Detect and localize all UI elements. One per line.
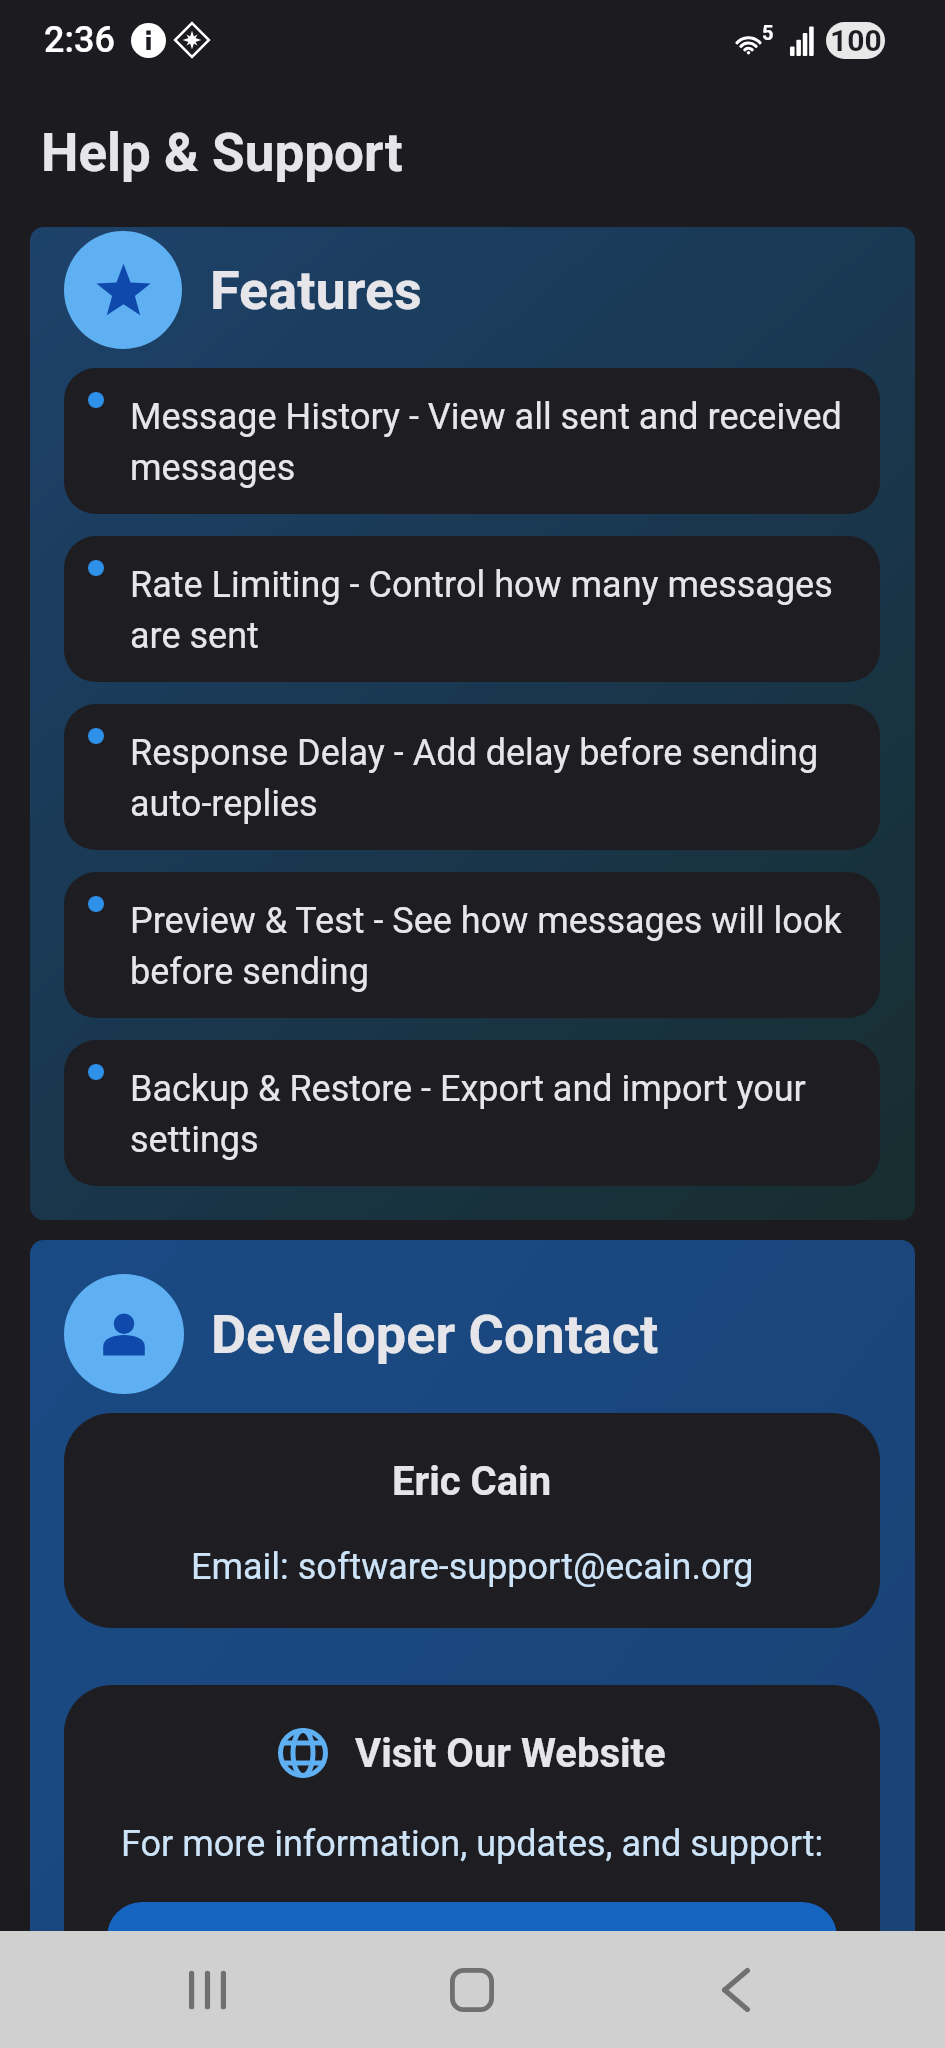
- button[interactable]: Recent apps: [157, 1931, 257, 2048]
- button[interactable]: Message History - View all sent and rece…: [64, 368, 880, 514]
- button[interactable]: Eric Cain: [64, 1413, 880, 1628]
- staticText: 5: [762, 21, 774, 44]
- staticText: 100: [830, 23, 882, 58]
- button[interactable]: Preview & Test - See how messages will l…: [64, 872, 880, 1018]
- staticText: Response Delay - Add delay before sendin…: [130, 732, 856, 824]
- button[interactable]: Home: [422, 1931, 522, 2048]
- staticText: Help & Support: [41, 122, 403, 184]
- staticText: Email: software-support@ecain.org: [191, 1546, 754, 1588]
- button[interactable]: Response Delay - Add delay before sendin…: [64, 704, 880, 850]
- button[interactable]: Backup & Restore - Export and import you…: [64, 1040, 880, 1186]
- staticText: Visit Our Website: [355, 1730, 666, 1777]
- staticText: Backup & Restore - Export and import you…: [130, 1068, 856, 1160]
- staticText: Rate Limiting - Control how many message…: [130, 564, 856, 656]
- button[interactable]: Back: [686, 1931, 786, 2048]
- staticText: Message History - View all sent and rece…: [130, 396, 856, 488]
- button[interactable]: Rate Limiting - Control how many message…: [64, 536, 880, 682]
- staticText: 2:36: [44, 19, 115, 61]
- staticText: For more information, updates, and suppo…: [121, 1823, 824, 1865]
- staticText: Developer Contact: [211, 1303, 659, 1366]
- staticText: Features: [210, 259, 422, 322]
- staticText: Eric Cain: [392, 1458, 552, 1505]
- staticText: Preview & Test - See how messages will l…: [130, 900, 856, 992]
- button[interactable]: [107, 1902, 837, 1972]
